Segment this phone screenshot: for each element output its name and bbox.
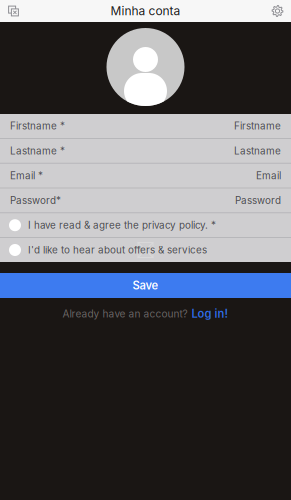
button[interactable]: I'd like to hear about offers & services — [0, 238, 291, 262]
staticText: Email — [256, 170, 281, 181]
button[interactable]: Lastname * — [0, 139, 291, 163]
button[interactable]: I have read & agree the privacy policy. … — [0, 213, 291, 237]
image — [137, 242, 153, 258]
staticText: I have read & agree the privacy policy. … — [28, 219, 216, 231]
staticText: Already have an account? — [62, 308, 187, 320]
staticText: Save — [132, 279, 158, 292]
button[interactable]: Duplicate — [2, 1, 25, 20]
button[interactable]: Settings — [266, 1, 289, 20]
button[interactable]: Save — [0, 273, 291, 298]
button[interactable]: Firstname * — [0, 114, 291, 138]
staticText: Password* — [10, 194, 61, 206]
button[interactable]: Email * — [0, 164, 291, 188]
staticText: Lastname — [234, 145, 281, 157]
staticText: Minha conta — [110, 4, 180, 18]
staticText: Firstname * — [10, 120, 65, 132]
staticText: I'd like to hear about offers & services — [28, 244, 207, 256]
button[interactable]: Password* — [0, 188, 291, 212]
staticText: Lastname * — [10, 145, 65, 157]
button[interactable]: Log in! — [191, 307, 228, 321]
staticText: Password — [235, 194, 281, 206]
staticText: Email * — [10, 170, 43, 181]
staticText: Firstname — [234, 120, 281, 132]
staticText: Log in! — [191, 307, 228, 321]
